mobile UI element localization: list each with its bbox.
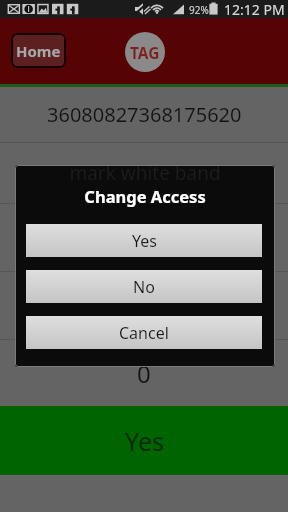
button[interactable]: mark white band <box>0 143 288 203</box>
button[interactable]: TAG <box>125 32 165 72</box>
staticText: 0 <box>137 289 151 322</box>
button[interactable]: Home <box>11 33 66 68</box>
staticText: Yes <box>125 424 164 458</box>
staticText: 0 <box>137 357 151 390</box>
staticText: 36080827368175620 <box>47 101 242 128</box>
staticText: 12:12 PM <box>224 0 285 18</box>
button[interactable]: Yes <box>0 406 288 475</box>
staticText: Home <box>16 41 61 61</box>
staticText: TAG <box>130 42 160 63</box>
button[interactable]: Cancel <box>26 316 262 349</box>
button[interactable]: No <box>26 270 262 303</box>
button[interactable]: 0 <box>0 272 288 339</box>
staticText: Cancel <box>119 322 169 344</box>
staticText: 92% <box>189 3 209 17</box>
button[interactable]: 0 <box>0 340 288 406</box>
button[interactable]: 36080827368175620 <box>0 86 288 142</box>
button[interactable]: Yes <box>26 224 262 257</box>
staticText: No <box>133 276 155 298</box>
staticText: 0 <box>137 221 151 254</box>
staticText: mark white band <box>68 160 220 186</box>
staticText: Yes <box>132 230 157 252</box>
staticText: Change Access <box>15 185 275 207</box>
button[interactable]: 0 <box>0 204 288 271</box>
staticText: mark white band <box>15 165 275 186</box>
